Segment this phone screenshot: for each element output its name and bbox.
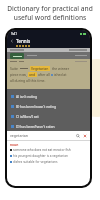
staticText: vegetarian: [10, 133, 29, 138]
other: Search: [76, 134, 80, 138]
button[interactable]: D) has been/hasn't eaten: [11, 121, 86, 131]
staticText: and: [29, 72, 36, 77]
staticText: someone who does not eat meat or fish: [13, 148, 71, 152]
staticText: Tennis: [16, 38, 31, 44]
staticText: ished at: [53, 72, 67, 77]
button[interactable]: C) is/likes/I eat: [11, 111, 86, 121]
staticText: 9:41: [11, 32, 17, 36]
other: Clear: [83, 134, 87, 138]
staticText: dishes suitable for vegetarians: [13, 160, 58, 164]
staticText: all during all this time.: [10, 78, 46, 83]
staticText: noun: [10, 143, 19, 147]
other: Back: [10, 39, 14, 43]
staticText: his youngest daughter is a vegetarian: [13, 154, 68, 158]
button[interactable]: B) has been/wasn't eating: [11, 101, 86, 111]
button[interactable]: vegetarian: [10, 131, 87, 140]
staticText: A) isn't eating: [16, 94, 37, 98]
staticText: after all: [37, 72, 51, 77]
staticText: Dictionary for practical and useful word…: [0, 4, 100, 22]
staticText: B) has been/wasn't eating: [16, 104, 56, 108]
staticText: D) has been/hasn't eaten: [16, 124, 55, 128]
staticText: the winner: [52, 66, 70, 71]
staticText: C) is/likes/I eat: [16, 114, 39, 118]
button[interactable]: [10, 53, 24, 59]
staticText: piece now,: [10, 72, 28, 77]
button[interactable]: Back: [10, 37, 87, 45]
button[interactable]: A) isn't eating: [11, 91, 86, 101]
staticText: Vegetarian: [31, 66, 49, 71]
staticText: Suite: [10, 66, 18, 71]
